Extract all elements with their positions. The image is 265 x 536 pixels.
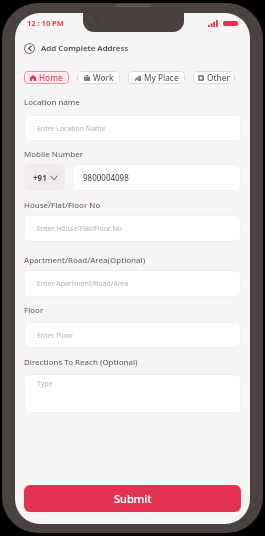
button[interactable]: Home <box>24 71 69 84</box>
button[interactable]: Back <box>24 43 35 54</box>
button[interactable]: +91 <box>24 164 65 191</box>
staticText: Enter House/Flat/Floor No <box>37 224 122 233</box>
button[interactable]: My Place <box>128 71 185 84</box>
staticText: Type <box>37 379 53 388</box>
staticText: Floor <box>24 305 44 316</box>
staticText: Enter Apartment/Road/Area <box>37 279 129 288</box>
staticText: Apartment/Road/Area(Optional) <box>24 255 146 266</box>
staticText: Work <box>93 72 114 83</box>
button[interactable]: Work <box>77 71 120 84</box>
staticText: Home <box>39 72 63 83</box>
staticText: Enter Floor <box>37 331 73 340</box>
button[interactable]: Enter Apartment/Road/Area <box>24 270 241 297</box>
staticText: Mobile Number <box>24 149 84 160</box>
button[interactable]: Type <box>24 374 241 413</box>
staticText: Enter Location Name <box>37 124 106 133</box>
button[interactable]: 9800004098 <box>72 164 241 191</box>
staticText: Add Complete Address <box>41 43 129 54</box>
button[interactable]: Enter Location Name <box>24 115 241 141</box>
staticText: +91 <box>33 172 47 183</box>
staticText: My Place <box>144 72 179 83</box>
button[interactable]: Enter Floor <box>24 322 241 348</box>
staticText: Other <box>207 72 230 83</box>
button[interactable]: Enter House/Flat/Floor No <box>24 215 241 242</box>
button[interactable]: Other <box>193 71 235 84</box>
staticText: Location name <box>24 97 80 108</box>
staticText: House/Flat/Floor No <box>24 200 101 211</box>
staticText: Directions To Reach (Optional) <box>24 357 138 368</box>
staticText: 12 : 10 PM <box>27 18 64 28</box>
staticText: 9800004098 <box>83 172 129 183</box>
button[interactable]: Submit <box>24 485 241 512</box>
staticText: Submit <box>114 491 152 506</box>
